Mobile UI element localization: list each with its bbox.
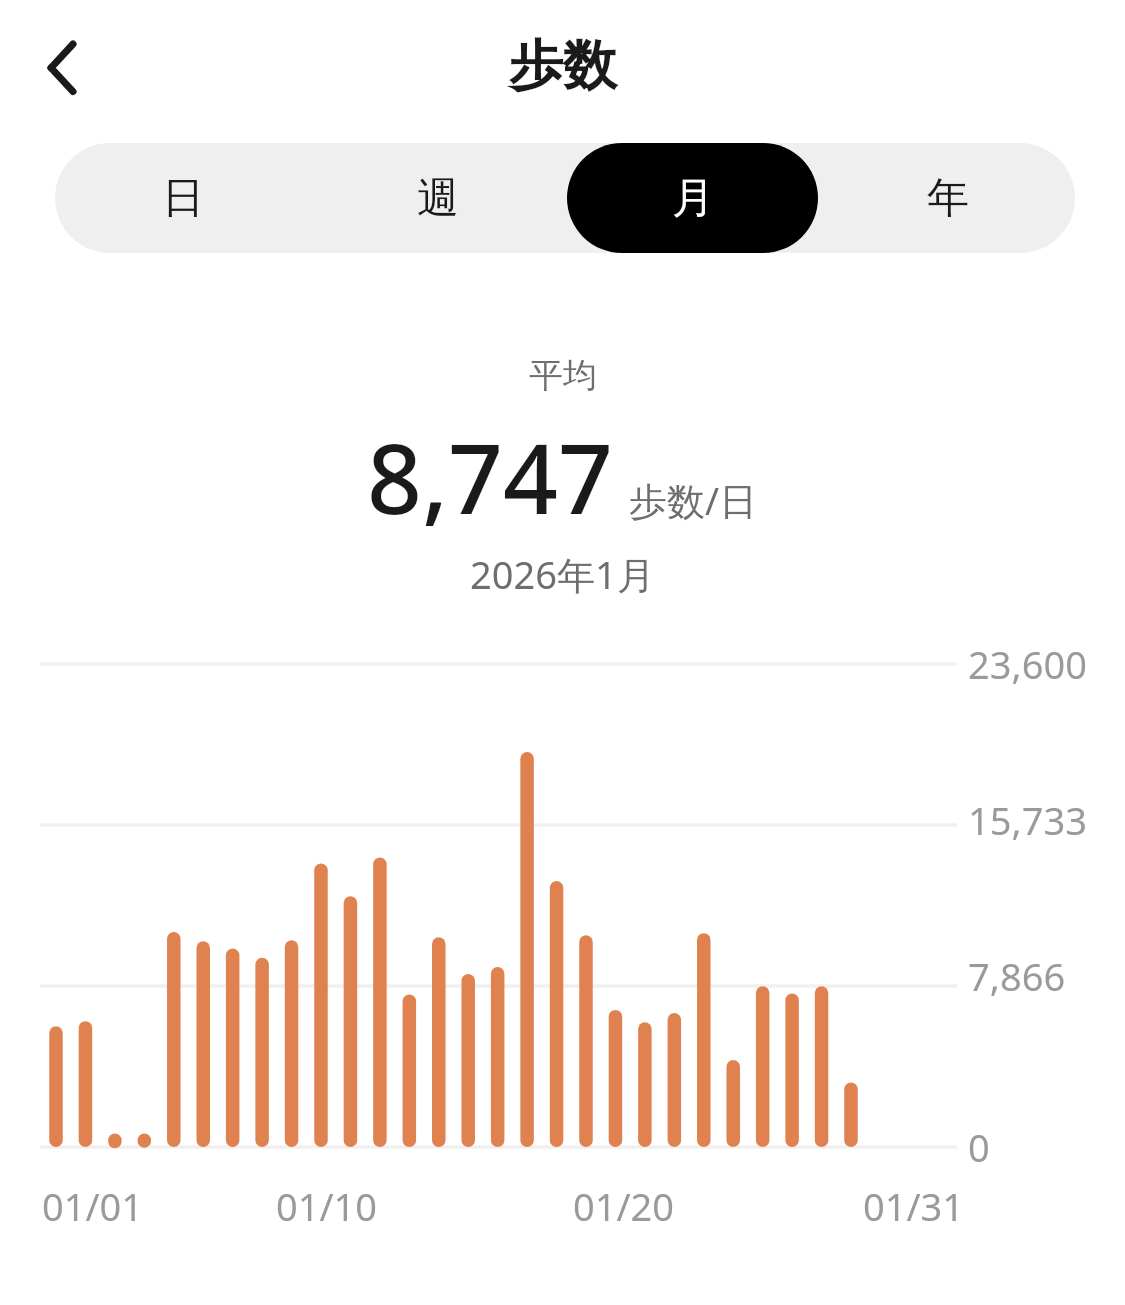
button[interactable]: 週 (312, 143, 563, 253)
button[interactable]: 日 (57, 143, 308, 253)
button[interactable]: 年 (822, 143, 1073, 253)
staticText: 01/31 (863, 1180, 965, 1232)
staticText: 01/01 (42, 1180, 144, 1232)
staticText: 月 (672, 172, 714, 225)
staticText: 0 (968, 1121, 990, 1173)
staticText: 歩数/日 (629, 474, 758, 526)
staticText: 週 (417, 172, 459, 225)
staticText: 01/20 (573, 1180, 675, 1232)
staticText: 23,600 (968, 638, 1087, 690)
staticText: 日 (162, 172, 204, 225)
button[interactable]: Back (22, 22, 110, 110)
button[interactable]: 月 (567, 143, 818, 253)
staticText: 01/10 (276, 1180, 378, 1232)
staticText: 8,747 (367, 411, 613, 542)
staticText: 年 (927, 172, 969, 225)
staticText: 7,866 (968, 950, 1066, 1002)
staticText: 歩数 (509, 32, 617, 100)
staticText: 15,733 (968, 794, 1087, 846)
staticText: 2026年1月 (470, 548, 655, 600)
staticText: 平均 (529, 354, 597, 397)
